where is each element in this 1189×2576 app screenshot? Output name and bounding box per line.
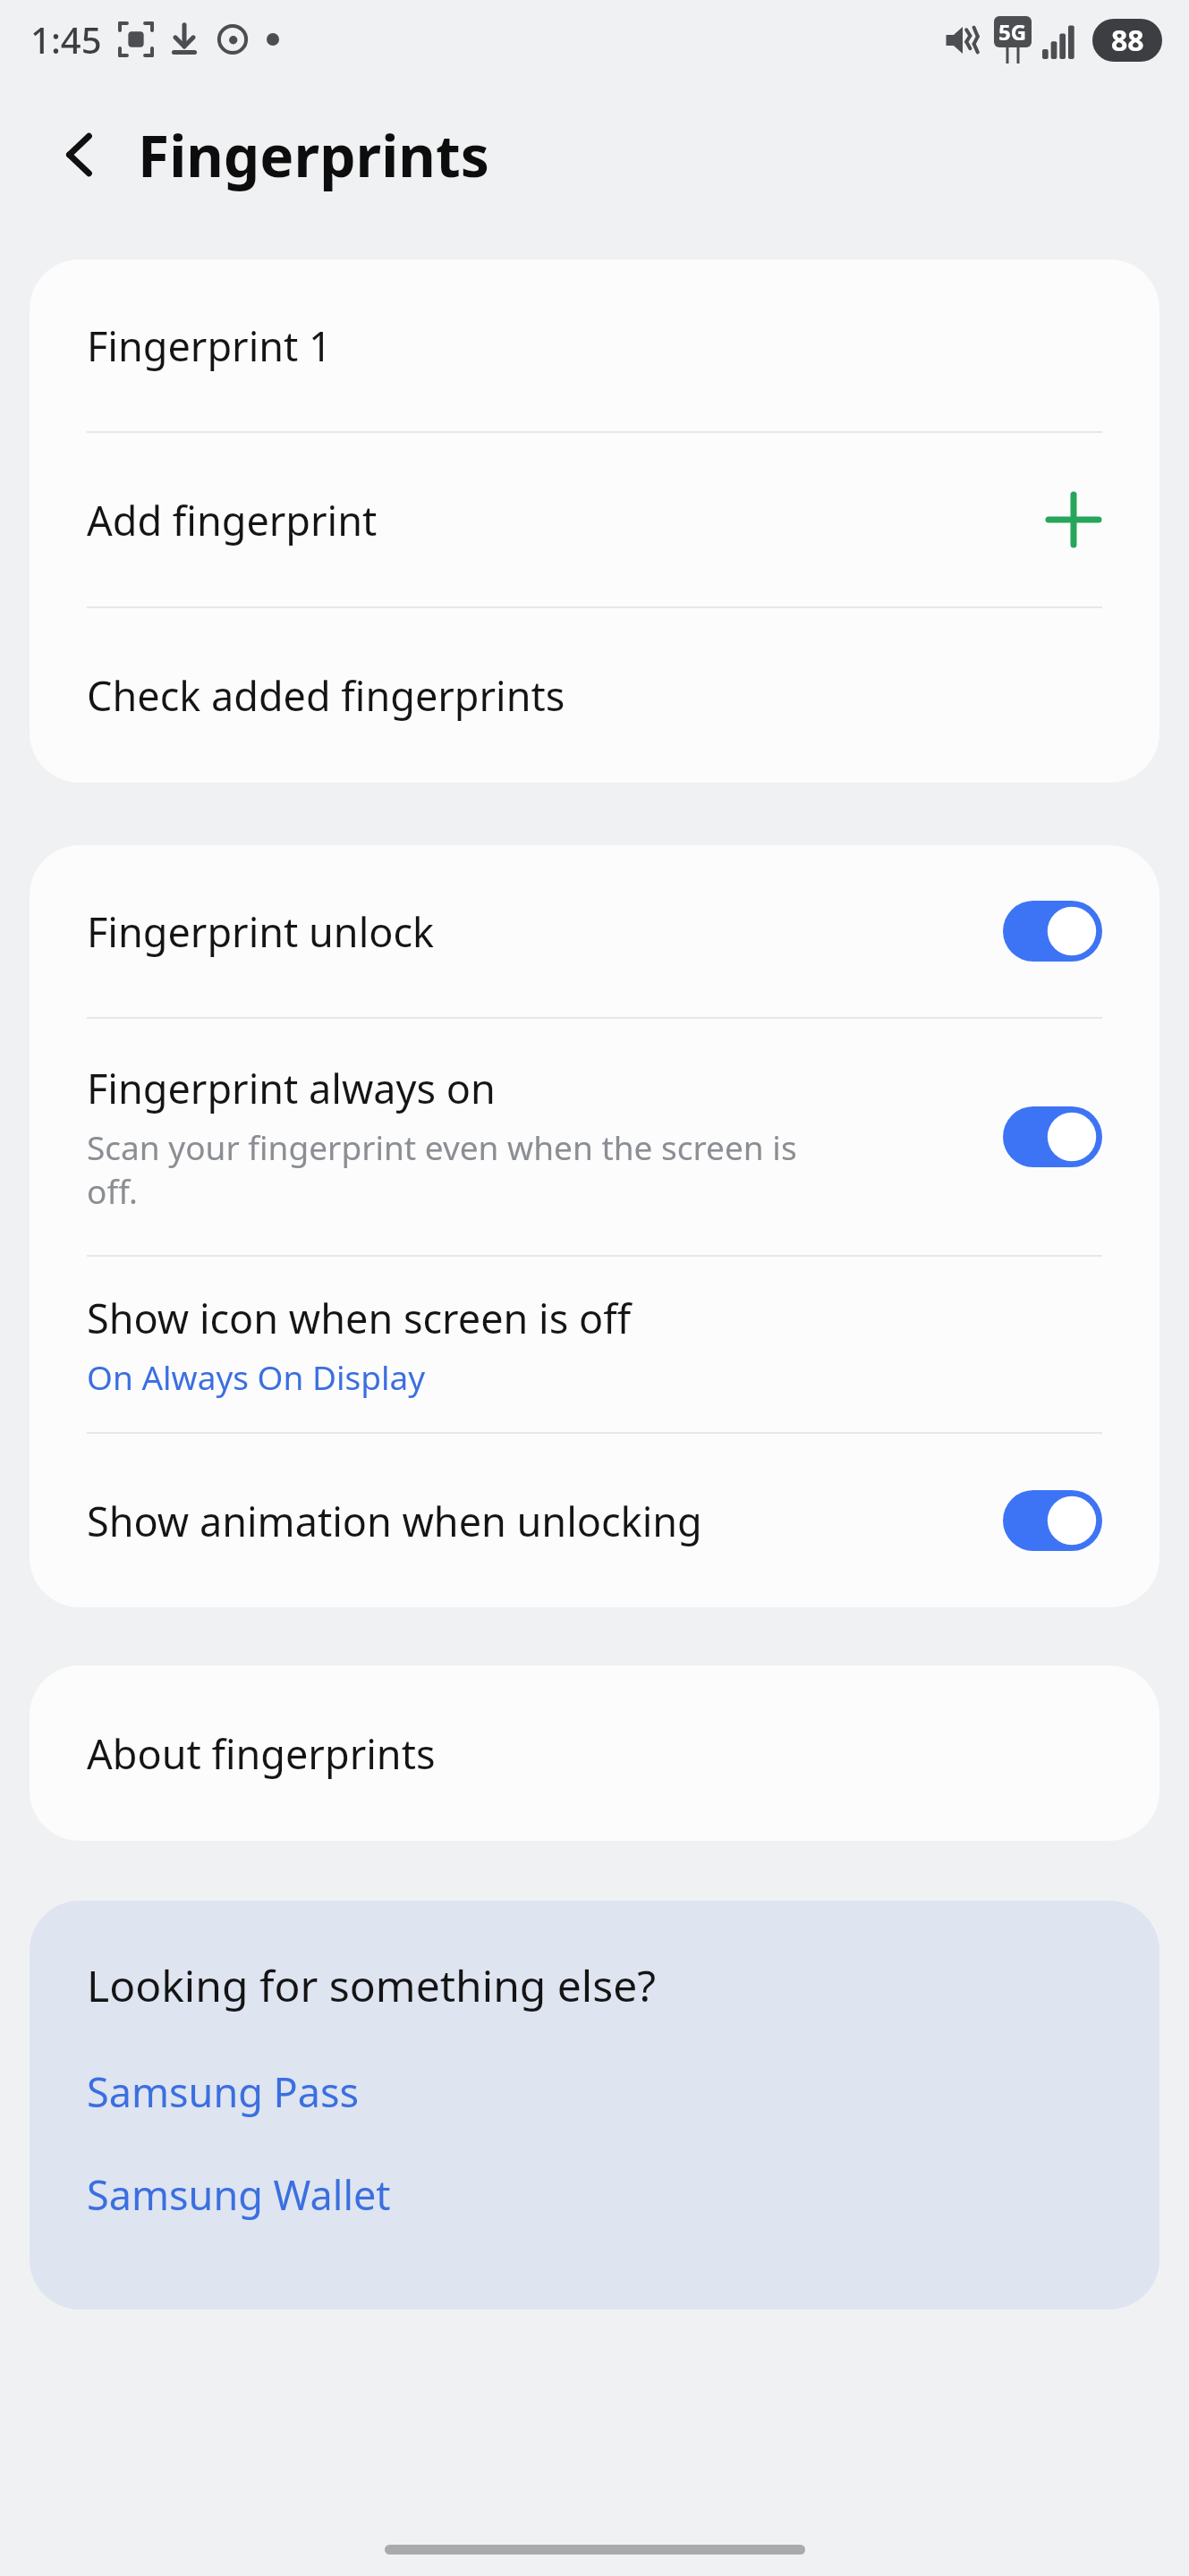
staticText: Fingerprints [138, 116, 489, 194]
staticText: Samsung Wallet [87, 2167, 391, 2222]
staticText: 88 [1111, 21, 1144, 60]
button[interactable]: Samsung Wallet [30, 2155, 1159, 2234]
staticText: Samsung Pass [87, 2064, 360, 2119]
staticText: Fingerprint always on [87, 1061, 496, 1115]
staticText: Show animation when unlocking [87, 1494, 702, 1548]
button[interactable]: Fingerprint unlock [30, 845, 1159, 1017]
staticText: On Always On Display [87, 1354, 426, 1399]
button[interactable]: Fingerprint always on [30, 1019, 1159, 1255]
staticText: Add fingerprint [87, 493, 1045, 547]
button[interactable]: Show animation when unlocking [30, 1434, 1159, 1607]
staticText: About fingerprints [87, 1726, 436, 1781]
staticText: Show icon when screen is off [87, 1291, 632, 1345]
staticText: Fingerprint unlock [87, 904, 435, 959]
button[interactable]: Show icon when screen is off [30, 1257, 1159, 1432]
button[interactable]: Fingerprint 1 [30, 259, 1159, 431]
staticText: 5G [998, 17, 1027, 47]
staticText: 1:45 [30, 15, 102, 64]
staticText: Check added fingerprints [87, 668, 565, 723]
staticText: Scan your fingerprint even when the scre… [87, 1124, 797, 1214]
staticText: Fingerprint 1 [87, 318, 332, 373]
button[interactable]: About fingerprints [30, 1665, 1159, 1841]
button[interactable]: Back [36, 110, 125, 199]
button[interactable]: Add fingerprint [30, 433, 1159, 606]
button[interactable]: Samsung Pass [30, 2052, 1159, 2131]
staticText: Looking for something else? [87, 1956, 657, 2014]
button[interactable]: Check added fingerprints [30, 608, 1159, 783]
